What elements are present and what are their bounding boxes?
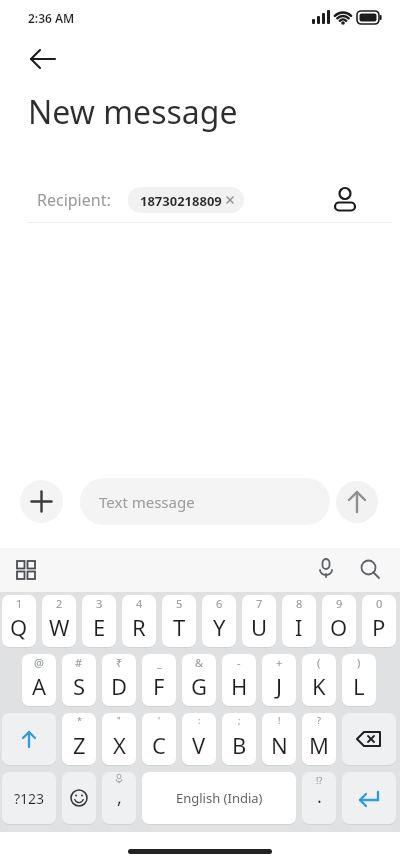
staticText: : — [198, 714, 201, 726]
button[interactable] — [20, 46, 64, 74]
button[interactable]: ( — [302, 654, 336, 706]
button[interactable] — [62, 772, 96, 824]
staticText: T — [173, 612, 186, 642]
staticText: 2:36 AM — [28, 10, 75, 26]
button[interactable]: ' — [142, 713, 176, 765]
staticText: New message — [28, 90, 238, 134]
staticText: X — [113, 730, 126, 760]
staticText: . — [317, 784, 322, 809]
staticText: English (India) — [176, 789, 263, 807]
staticText: P — [372, 612, 386, 642]
staticText: H — [231, 671, 248, 701]
staticText: 1 — [16, 596, 23, 611]
staticText: " — [117, 714, 121, 726]
staticText: F — [153, 671, 165, 701]
staticText: L — [353, 671, 365, 701]
button[interactable]: & — [182, 654, 216, 706]
staticText: 8 — [296, 596, 303, 611]
staticText: 2 — [56, 596, 63, 611]
staticText: Text message — [99, 492, 195, 512]
button[interactable]: 1 — [2, 595, 36, 647]
staticText: A — [32, 671, 47, 701]
button[interactable]: @ — [22, 654, 56, 706]
button[interactable] — [309, 552, 343, 586]
staticText: O — [330, 612, 348, 642]
staticText: C — [152, 730, 166, 760]
staticText: Recipient: — [37, 189, 111, 211]
staticText: , — [117, 785, 122, 810]
staticText: B — [232, 730, 247, 760]
staticText: R — [132, 612, 146, 642]
button[interactable]: 6 — [202, 595, 236, 647]
button[interactable]: ) — [342, 654, 376, 706]
staticText: ) — [357, 655, 361, 670]
staticText: 4 — [136, 596, 143, 611]
staticText: ! — [278, 714, 281, 726]
staticText: _ — [157, 655, 162, 670]
staticText: I — [295, 612, 303, 642]
button[interactable] — [342, 713, 396, 765]
staticText: W — [49, 612, 70, 642]
button[interactable] — [342, 772, 396, 824]
button[interactable]: _ — [142, 654, 176, 706]
staticText: & — [195, 655, 204, 670]
staticText: 7 — [256, 596, 263, 611]
staticText: J — [276, 671, 283, 701]
button[interactable] — [2, 713, 56, 765]
button[interactable]: 9 — [322, 595, 356, 647]
button[interactable]: ?123 — [2, 772, 56, 824]
staticText: 6 — [216, 596, 223, 611]
button[interactable] — [353, 552, 387, 586]
button[interactable] — [327, 181, 363, 217]
staticText: ' — [158, 714, 161, 726]
button[interactable] — [9, 553, 43, 587]
button[interactable]: 3 — [82, 595, 116, 647]
button[interactable]: * — [62, 713, 96, 765]
button[interactable]: ? — [302, 713, 336, 765]
button[interactable]: English (India) — [142, 772, 296, 824]
button[interactable] — [20, 480, 63, 523]
staticText: Q — [10, 612, 28, 642]
button[interactable]: ; — [222, 713, 256, 765]
button[interactable]: # — [62, 654, 96, 706]
staticText: D — [111, 671, 128, 701]
button[interactable]: " — [102, 713, 136, 765]
staticText: ? — [317, 714, 321, 726]
staticText: @ — [34, 655, 44, 670]
button[interactable]: Text message — [80, 478, 330, 525]
button[interactable]: - — [222, 654, 256, 706]
button[interactable]: : — [182, 713, 216, 765]
button[interactable]: 0 — [362, 595, 396, 647]
staticText: E — [93, 612, 106, 642]
button[interactable]: 4 — [122, 595, 156, 647]
staticText: ₹ — [116, 655, 123, 670]
staticText: # — [75, 655, 83, 670]
button[interactable]: 18730218809 — [128, 187, 244, 213]
staticText: G — [191, 671, 208, 701]
staticText: ?123 — [14, 789, 45, 808]
button[interactable]: ! — [262, 713, 296, 765]
staticText: 9 — [336, 596, 343, 611]
button[interactable]: 8 — [282, 595, 316, 647]
staticText: ( — [317, 655, 321, 670]
button[interactable]: !? — [302, 772, 336, 824]
staticText: S — [73, 671, 86, 701]
button[interactable]: ₹ — [102, 654, 136, 706]
staticText: 5 — [176, 596, 183, 611]
staticText: Z — [73, 730, 86, 760]
staticText: 3 — [96, 596, 103, 611]
button[interactable]: 7 — [242, 595, 276, 647]
staticText: - — [237, 655, 241, 670]
button[interactable]: 5 — [162, 595, 196, 647]
staticText: 0 — [376, 596, 383, 611]
button[interactable] — [336, 481, 378, 523]
staticText: K — [312, 671, 326, 701]
button[interactable]: 2 — [42, 595, 76, 647]
button[interactable]: + — [262, 654, 296, 706]
staticText: + — [276, 655, 283, 670]
button[interactable]: , — [102, 772, 136, 824]
staticText: V — [192, 730, 206, 760]
staticText: M — [309, 730, 329, 760]
staticText: !? — [316, 774, 323, 786]
staticText: * — [77, 714, 82, 726]
